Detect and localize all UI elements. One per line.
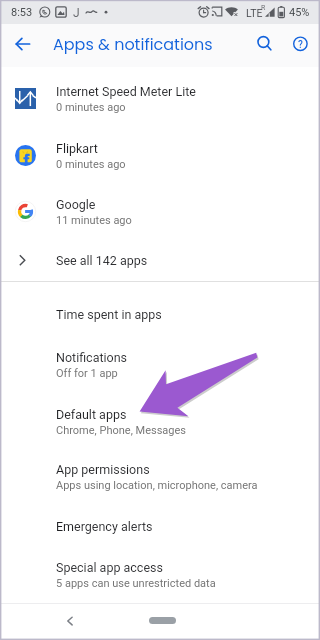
button[interactable]: Back: [58, 609, 82, 633]
staticText: Internet Speed Meter Lite: [56, 84, 196, 99]
staticText: 8:53: [11, 6, 33, 19]
button[interactable]: Internet Speed Meter Lite: [0, 71, 320, 127]
button[interactable]: See all 142 apps: [0, 240, 320, 280]
staticText: App permissions: [56, 462, 150, 477]
staticText: 5 apps can use unrestricted data: [56, 577, 216, 590]
staticText: 0 minutes ago: [56, 158, 126, 171]
button[interactable]: Special app access: [0, 560, 320, 605]
staticText: Flipkart: [56, 141, 98, 156]
staticText: 0 minutes ago: [56, 101, 126, 114]
button[interactable]: Search: [250, 30, 282, 62]
staticText: Emergency alerts: [56, 519, 153, 534]
staticText: R: [261, 4, 266, 12]
button[interactable]: Google: [0, 184, 320, 240]
button[interactable]: Notifications: [0, 350, 320, 406]
button[interactable]: App permissions: [0, 462, 320, 519]
staticText: J: [73, 6, 80, 20]
button[interactable]: Flipkart: [0, 128, 320, 184]
button[interactable]: Time spent in apps: [0, 307, 320, 349]
staticText: Time spent in apps: [56, 307, 162, 322]
button[interactable]: Emergency alerts: [0, 519, 320, 560]
staticText: Default apps: [56, 407, 127, 422]
button[interactable]: Back: [6, 30, 38, 62]
staticText: Notifications: [56, 350, 128, 365]
staticText: Special app access: [56, 560, 163, 575]
staticText: ?: [298, 39, 303, 51]
button[interactable]: Default apps: [0, 407, 320, 462]
button[interactable]: Help: [284, 30, 316, 62]
button[interactable]: Home: [149, 617, 176, 624]
staticText: 45%: [289, 6, 310, 19]
staticText: LTE: [246, 7, 263, 19]
staticText: Off for 1 app: [56, 367, 118, 380]
staticText: Google: [56, 197, 96, 212]
staticText: Chrome, Phone, Messages: [56, 424, 187, 437]
staticText: See all 142 apps: [56, 253, 148, 268]
staticText: Apps & notifications: [53, 33, 213, 55]
staticText: 11 minutes ago: [56, 214, 132, 227]
staticText: Apps using location, microphone, camera: [56, 479, 258, 492]
